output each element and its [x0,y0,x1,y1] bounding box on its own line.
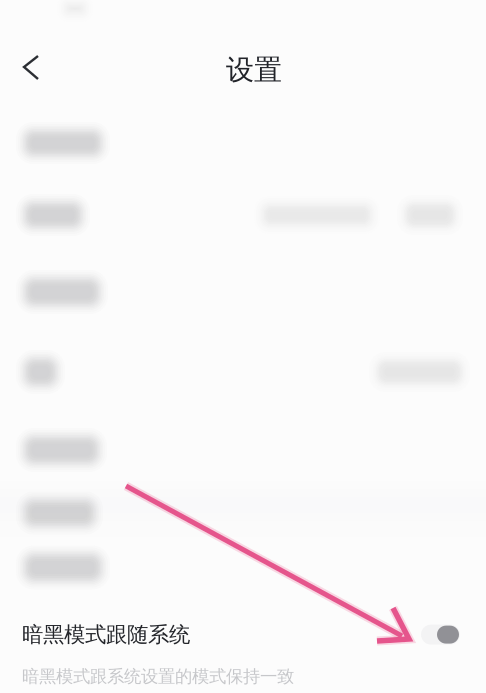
button[interactable]: 暗黑模式跟随系统 [0,621,486,693]
button[interactable]: Setting 6 [0,486,486,540]
button[interactable]: Setting 2 [0,176,486,254]
button[interactable]: Back [0,0,59,94]
button[interactable]: Setting 7 [0,540,486,595]
button[interactable]: 暗黑模式跟随系统 [421,625,460,645]
staticText: 暗黑模式跟系统设置的模式保持一致 [22,666,294,687]
button[interactable]: Setting 4 [0,330,486,414]
staticText: 设置 [226,53,282,87]
staticText: 暗黑模式跟随系统 [22,621,190,648]
button[interactable]: Setting 5 [0,414,486,486]
button[interactable]: Setting 1 [0,110,486,176]
button[interactable]: Setting 3 [0,254,486,330]
